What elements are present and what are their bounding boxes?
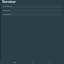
button[interactable]: Overview [0,0,64,4]
button[interactable]: Profile [47,60,52,64]
button[interactable]: Search [30,60,35,64]
button[interactable] [2,9,62,12]
button[interactable] [2,5,62,8]
button[interactable]: Home [12,60,17,64]
staticText: Overview [2,0,16,4]
button[interactable] [2,13,62,16]
